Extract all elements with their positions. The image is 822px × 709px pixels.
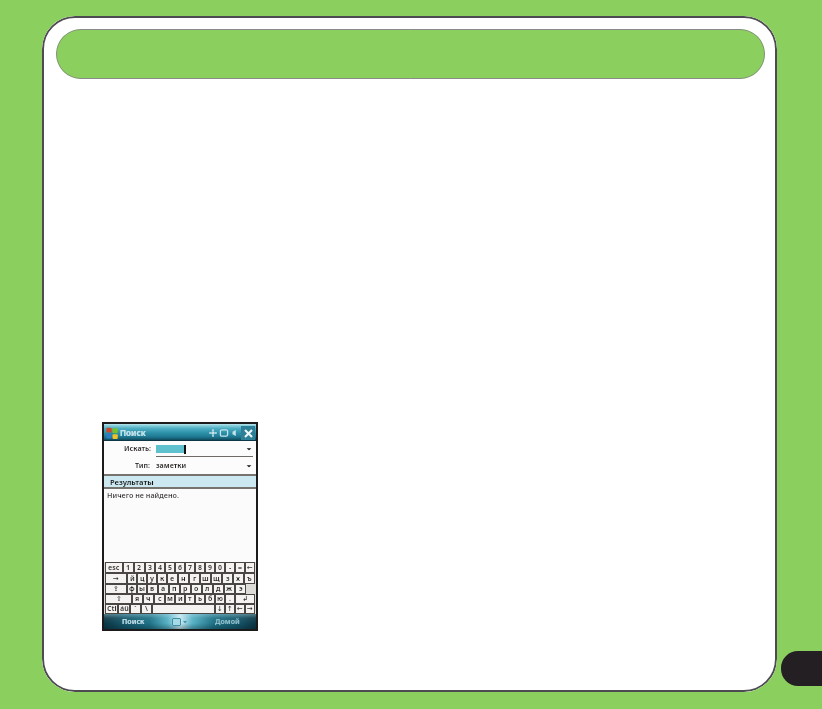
staticText: ↑ [227,605,233,613]
staticText: й [130,574,135,584]
button[interactable]: а [158,584,169,594]
staticText: р [183,584,188,594]
staticText: Поиск [120,427,146,438]
button[interactable]: у [147,573,157,584]
button[interactable]: ю [215,594,225,604]
staticText: ⇧ [116,595,122,603]
button[interactable]: 8 [195,562,205,573]
staticText: к [160,574,165,584]
button[interactable]: 2 [134,562,145,573]
staticText: 3 [148,563,153,573]
staticText: ↲ [242,595,248,603]
button[interactable]: ш [200,573,211,584]
button[interactable]: о [191,584,202,594]
staticText: ц [140,574,145,584]
staticText: 7 [188,563,193,573]
button[interactable]: э [235,584,246,594]
button[interactable]: Search screen screenshot [102,422,258,631]
staticText: ` [134,604,137,614]
button[interactable]: ↑ [225,604,235,614]
staticText: . [229,594,231,604]
staticText: Результаты [110,477,154,487]
staticText: ш [202,574,209,584]
button[interactable]: Домой [215,617,240,627]
button[interactable]: ↓ [215,604,225,614]
button[interactable]: ч [143,594,154,604]
button[interactable]: х [233,573,244,584]
button[interactable]: к [157,573,167,584]
button[interactable]: Page tab [781,651,822,686]
button[interactable]: \ [141,604,152,614]
staticText: д [216,584,221,594]
staticText: ю [217,594,223,604]
button[interactable]: т [185,594,195,604]
staticText: → [113,575,119,583]
button[interactable]: → [105,573,127,584]
button[interactable]: = [235,562,245,573]
button[interactable]: . [225,594,235,604]
button[interactable]: в [147,584,158,594]
other: Volume [230,428,240,438]
button[interactable]: ц [137,573,147,584]
button[interactable]: ы [137,584,147,594]
button[interactable]: ⇪ [105,584,127,594]
button[interactable]: р [180,584,191,594]
button[interactable]: 5 [165,562,175,573]
other: Battery [219,428,229,438]
staticText: о [194,584,199,594]
button[interactable]: я [132,594,143,604]
button[interactable]: е [167,573,178,584]
button[interactable]: 0 [215,562,225,573]
button[interactable]: 9 [205,562,215,573]
button[interactable]: ъ [244,573,255,584]
button[interactable]: м [165,594,175,604]
button[interactable] [152,604,215,614]
staticText: е [170,574,175,584]
button[interactable]: 7 [185,562,195,573]
button[interactable]: ← [235,604,245,614]
button[interactable]: esc [105,562,123,573]
button[interactable]: Поиск [122,617,145,627]
button[interactable]: г [189,573,200,584]
staticText: щ [213,574,220,584]
button[interactable]: 6 [175,562,185,573]
button[interactable]: 4 [155,562,165,573]
button[interactable]: 1 [123,562,134,573]
staticText: э [239,584,243,594]
button[interactable]: ↲ [235,594,255,604]
button[interactable]: с [154,594,165,604]
button[interactable]: ь [195,594,205,604]
button[interactable]: ж [224,584,235,594]
staticText: → [247,605,253,613]
button[interactable]: - [225,562,235,573]
button[interactable]: ⇧ [105,594,132,604]
other: Connectivity [208,428,218,438]
staticText: з [226,574,230,584]
button[interactable]: áü [118,604,130,614]
staticText: 9 [208,563,213,573]
button[interactable]: Ctl [105,604,118,614]
button[interactable]: п [169,584,180,594]
button[interactable]: ← [245,562,255,573]
button[interactable]: д [213,584,224,594]
button[interactable]: з [222,573,233,584]
staticText: м [167,594,173,604]
button[interactable]: л [202,584,213,594]
staticText: ↓ [217,605,223,613]
button[interactable]: ф [127,584,137,594]
button[interactable]: н [178,573,189,584]
staticText: ы [139,584,145,594]
staticText: л [205,584,210,594]
button[interactable]: ` [130,604,141,614]
button[interactable]: щ [211,573,222,584]
button[interactable]: 3 [145,562,155,573]
staticText: Ничего не найдено. [107,490,179,500]
button[interactable]: й [127,573,137,584]
button[interactable]: Keyboard [172,618,181,626]
button[interactable] [56,29,765,79]
button[interactable]: → [245,604,255,614]
button[interactable]: б [205,594,215,604]
button[interactable]: и [175,594,185,604]
button[interactable]: Close [241,426,255,440]
